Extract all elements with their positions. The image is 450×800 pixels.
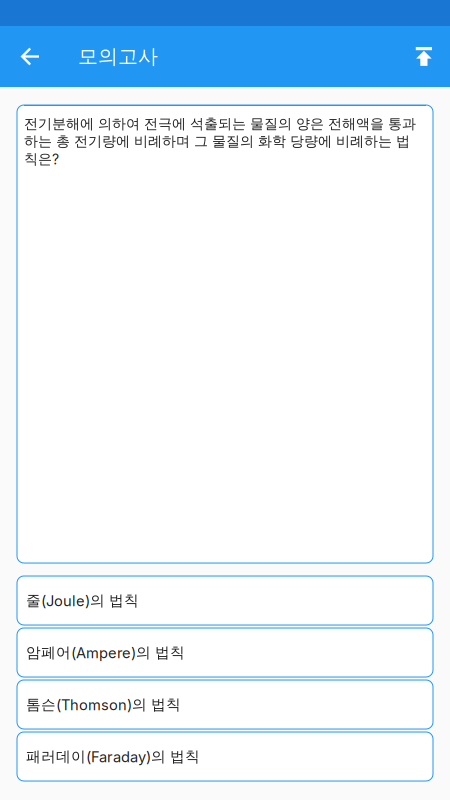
- button[interactable]: 패러데이(Faraday)의 법칙: [17, 732, 433, 781]
- button[interactable]: 줄(Joule)의 법칙: [17, 576, 433, 625]
- staticText: 암페어(Ampere)의 법칙: [26, 643, 185, 662]
- staticText: 톰슨(Thomson)의 법칙: [26, 695, 181, 714]
- button[interactable]: Back: [0, 26, 61, 87]
- staticText: 줄(Joule)의 법칙: [26, 591, 139, 610]
- staticText: 패러데이(Faraday)의 법칙: [26, 747, 200, 766]
- button[interactable]: Submit answers: [398, 26, 450, 87]
- staticText: 모의고사: [78, 44, 158, 69]
- button[interactable]: 암페어(Ampere)의 법칙: [17, 628, 433, 677]
- button[interactable]: 톰슨(Thomson)의 법칙: [17, 680, 433, 729]
- staticText: 전기분해에 의하여 전극에 석출되는 물질의 양은 전해액을 통과하는 총 전기…: [24, 115, 416, 168]
